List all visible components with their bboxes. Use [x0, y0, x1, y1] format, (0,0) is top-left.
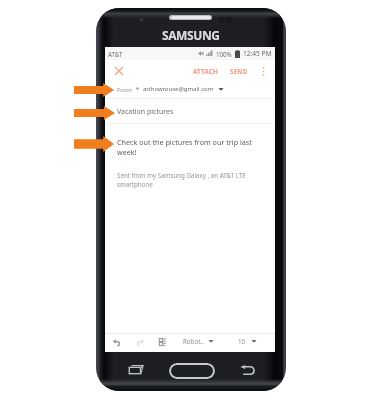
staticText: SAMSUNG — [162, 27, 220, 43]
staticText: Vacation pictures — [117, 107, 174, 117]
button[interactable]: Home — [169, 363, 215, 379]
staticText: AT&T — [108, 50, 123, 58]
staticText: 12:45 PM — [243, 49, 272, 58]
button[interactable]: Discard — [111, 63, 127, 79]
staticText: SEND — [230, 67, 248, 75]
button[interactable]: Robot.. — [183, 337, 214, 345]
button[interactable]: Vacation pictures — [117, 102, 267, 122]
button[interactable]: Back — [238, 363, 257, 377]
button[interactable]: Text formatting — [156, 336, 168, 348]
button[interactable]: More options — [256, 64, 270, 78]
button[interactable]: ATTACH — [190, 64, 222, 78]
staticText: ATTACH — [193, 67, 219, 75]
staticText: 100% — [216, 50, 232, 58]
button[interactable]: Undo — [110, 336, 122, 348]
staticText: Check out the pictures from our trip las… — [117, 137, 252, 157]
staticText: 10 — [238, 337, 246, 345]
button[interactable]: Redo — [134, 336, 146, 348]
button[interactable]: From — [117, 80, 267, 97]
staticText: From — [117, 85, 132, 93]
button[interactable]: Recent apps — [126, 362, 146, 376]
staticText: atthowtouse@gmail.com — [143, 85, 214, 93]
staticText: Robot.. — [183, 337, 204, 345]
staticText: Sent from my Samsung Galaxy , an AT&T LT… — [117, 171, 246, 189]
button[interactable]: SEND — [227, 64, 251, 78]
button[interactable]: 10 — [238, 337, 257, 345]
